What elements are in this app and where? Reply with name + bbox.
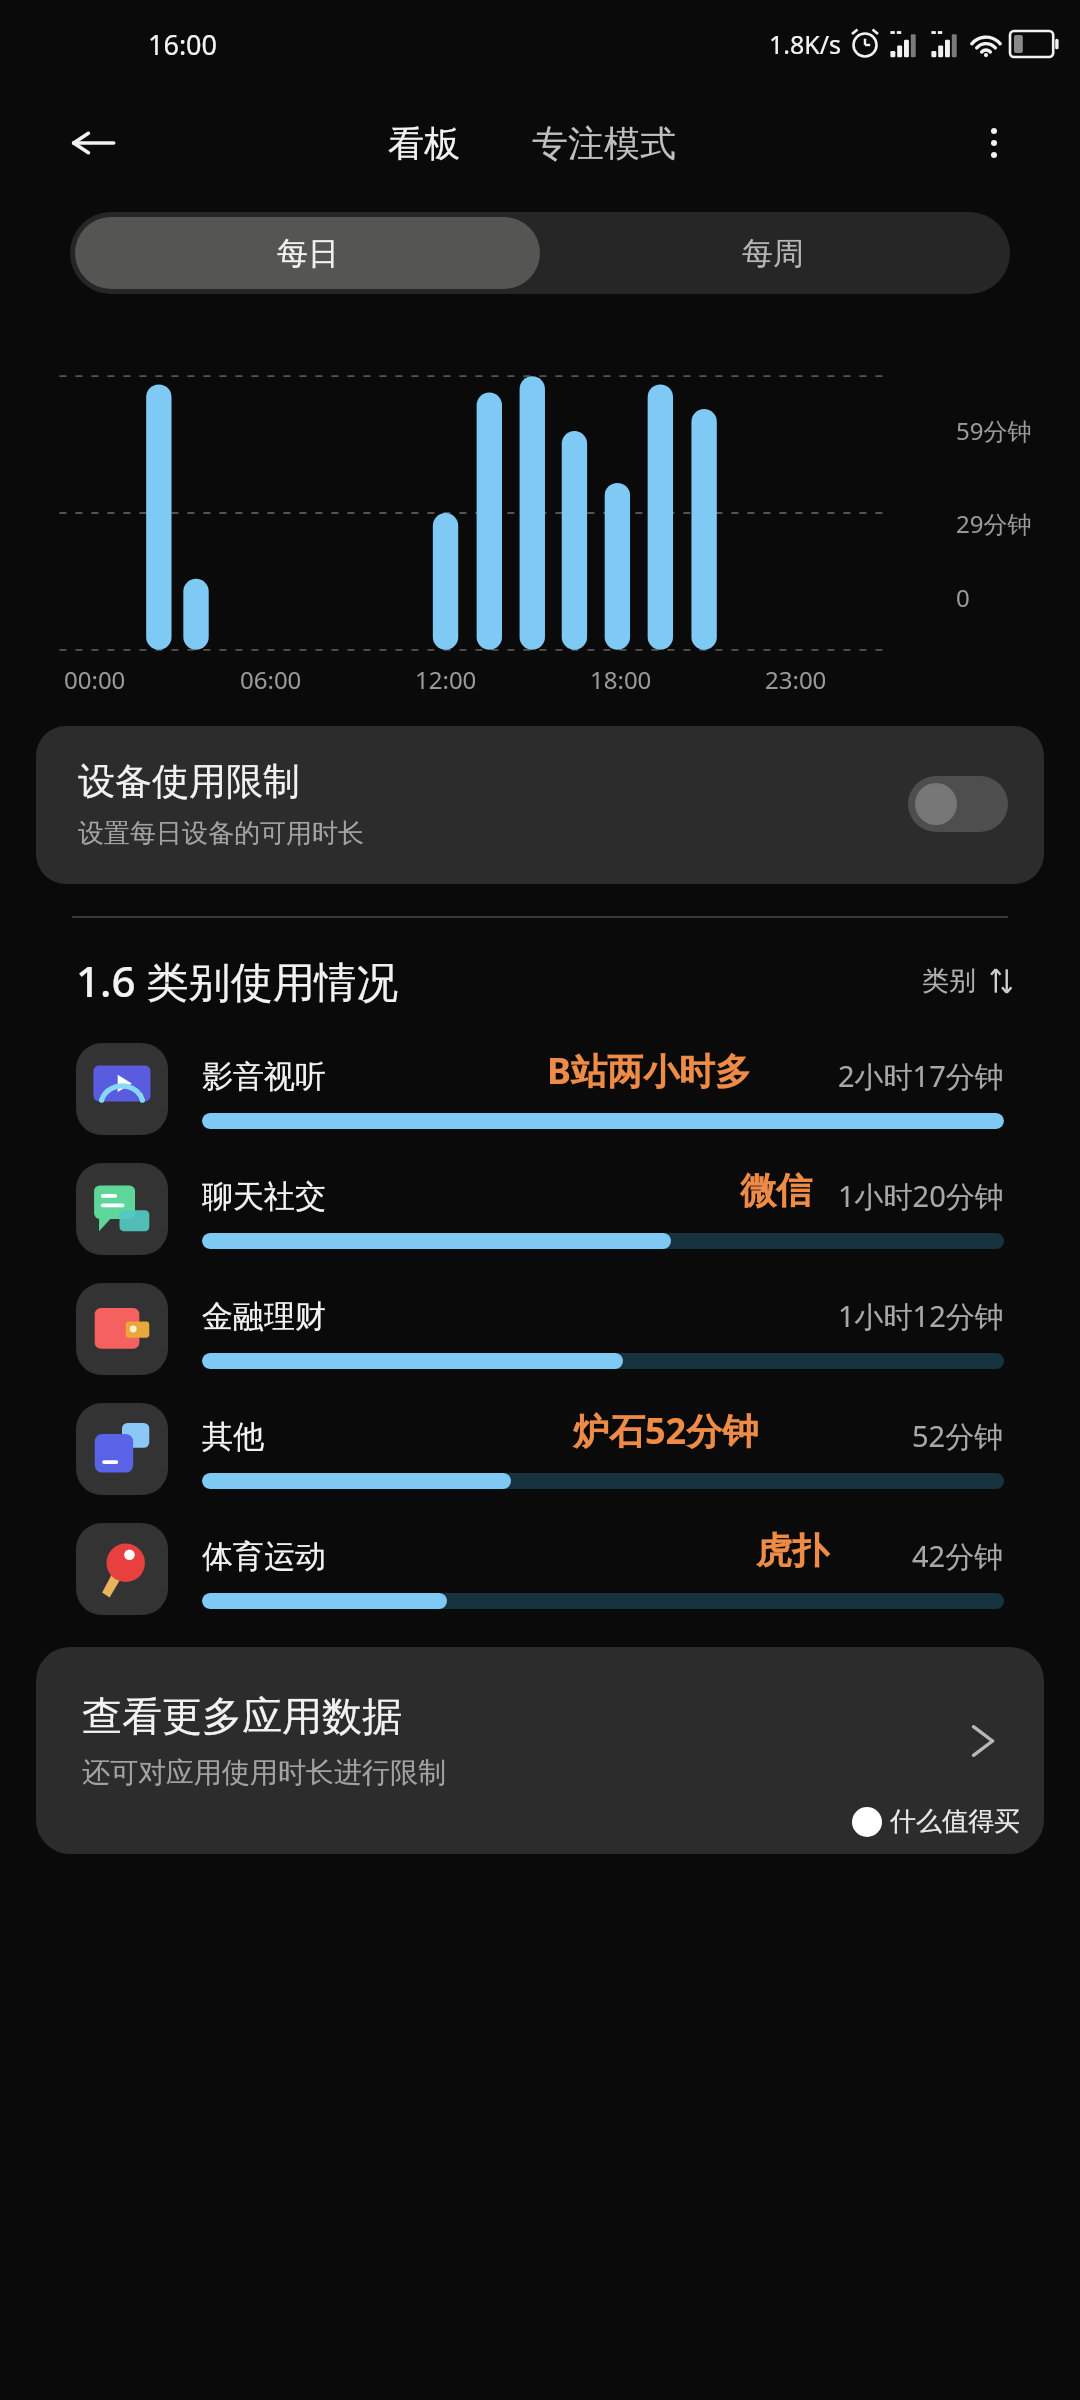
staticText: 其他: [202, 1417, 264, 1456]
button[interactable]: 金融理财: [0, 1269, 1080, 1389]
staticText: 52分钟: [912, 1416, 1004, 1456]
button[interactable]: 设备使用限制: [36, 726, 1044, 884]
staticText: 16:00: [148, 26, 218, 63]
staticText: 1.8K/s: [769, 27, 842, 61]
staticText: 42分钟: [912, 1536, 1004, 1576]
staticText: 23:00: [765, 663, 940, 696]
button[interactable]: 其他: [0, 1389, 1080, 1509]
button[interactable]: Back: [62, 112, 124, 174]
staticText: 1.6 类别使用情况: [76, 952, 399, 1009]
button[interactable]: Toggle device usage limit: [908, 776, 1008, 832]
staticText: 29分钟: [956, 507, 1032, 540]
staticText: 影音视听: [202, 1057, 326, 1096]
staticText: 每日: [277, 234, 339, 273]
staticText: B站两小时多: [547, 1046, 751, 1095]
staticText: 查看更多应用数据: [82, 1691, 402, 1741]
staticText: 设备使用限制: [78, 758, 300, 805]
staticText: 设置每日设备的可用时长: [78, 817, 364, 850]
staticText: 专注模式: [532, 121, 676, 166]
staticText: 1小时20分钟: [838, 1176, 1004, 1216]
staticText: 金融理财: [202, 1297, 326, 1336]
button[interactable]: 每周: [540, 217, 1005, 289]
staticText: 59分钟: [956, 414, 1032, 447]
staticText: 00:00: [64, 663, 240, 696]
staticText: 06:00: [240, 663, 415, 696]
staticText: 体育运动: [202, 1537, 326, 1576]
staticText: 看板: [388, 121, 460, 166]
staticText: 聊天社交: [202, 1177, 326, 1216]
staticText: 虎扑: [756, 1528, 828, 1573]
staticText: 2小时17分钟: [838, 1056, 1004, 1096]
button[interactable]: 专注模式: [522, 115, 686, 172]
staticText: 什么值得买: [890, 1805, 1020, 1838]
button[interactable]: 查看更多应用数据: [36, 1647, 1044, 1854]
staticText: 还可对应用使用时长进行限制: [82, 1755, 446, 1790]
button[interactable]: 每日: [75, 217, 540, 289]
staticText: 0: [956, 581, 970, 614]
button[interactable]: 影音视听: [0, 1029, 1080, 1149]
staticText: 18:00: [590, 663, 765, 696]
button[interactable]: 看板: [378, 115, 470, 172]
button[interactable]: 聊天社交: [0, 1149, 1080, 1269]
staticText: 12:00: [415, 663, 590, 696]
staticText: 每周: [742, 234, 804, 273]
staticText: 类别: [922, 964, 976, 998]
button[interactable]: 体育运动: [0, 1509, 1080, 1629]
button[interactable]: More options: [964, 113, 1024, 173]
staticText: 微信: [740, 1168, 812, 1213]
staticText: 1小时12分钟: [838, 1296, 1004, 1336]
staticText: 炉石52分钟: [573, 1406, 759, 1455]
button[interactable]: 类别: [918, 960, 1018, 1002]
